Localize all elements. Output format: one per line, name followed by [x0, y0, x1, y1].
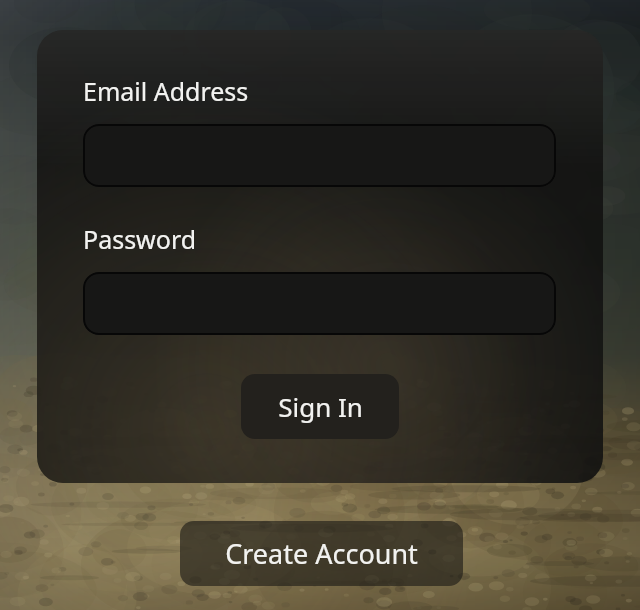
staticText: Email Address [83, 74, 249, 108]
button[interactable]: Create Account [180, 521, 463, 586]
staticText: Create Account [225, 535, 418, 572]
button[interactable]: Password input [83, 272, 556, 335]
button[interactable]: Email address input [83, 124, 556, 187]
staticText: Sign In [278, 389, 363, 424]
button[interactable]: Sign In [241, 374, 399, 439]
staticText: Password [83, 222, 197, 256]
